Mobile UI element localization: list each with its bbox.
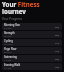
button[interactable]: Evening Walk	[2, 63, 62, 70]
staticText: Cycling	[4, 39, 13, 43]
staticText: Journey	[2, 7, 26, 14]
staticText: Yoga Flow	[4, 47, 17, 51]
button[interactable]: Morning Run	[2, 23, 62, 30]
staticText: 410	[55, 41, 60, 44]
staticText: 3.1 km	[4, 67, 12, 70]
staticText: Morning Run	[4, 23, 20, 27]
button[interactable]: Strength	[2, 31, 62, 38]
staticText: 5.2 km	[4, 27, 12, 30]
staticText: 390	[55, 57, 60, 60]
button[interactable]: Yoga Flow	[2, 47, 62, 54]
staticText: Evening Walk	[4, 63, 21, 67]
staticText: 1.2 km	[4, 59, 12, 62]
staticText: Strength	[4, 31, 15, 35]
staticText: 180	[55, 65, 60, 68]
button[interactable]: Swimming	[2, 55, 62, 62]
staticText: 150	[55, 49, 60, 52]
staticText: Your Fitness	[2, 0, 40, 7]
staticText: 280	[55, 33, 60, 36]
staticText: 30 min	[4, 51, 12, 54]
button[interactable]: Cycling	[2, 39, 62, 46]
staticText: 45 min	[4, 35, 12, 38]
staticText: 320	[55, 25, 60, 28]
staticText: 12.4 km	[4, 43, 13, 46]
staticText: Swimming	[4, 55, 17, 59]
staticText: Your Progress	[2, 17, 22, 21]
